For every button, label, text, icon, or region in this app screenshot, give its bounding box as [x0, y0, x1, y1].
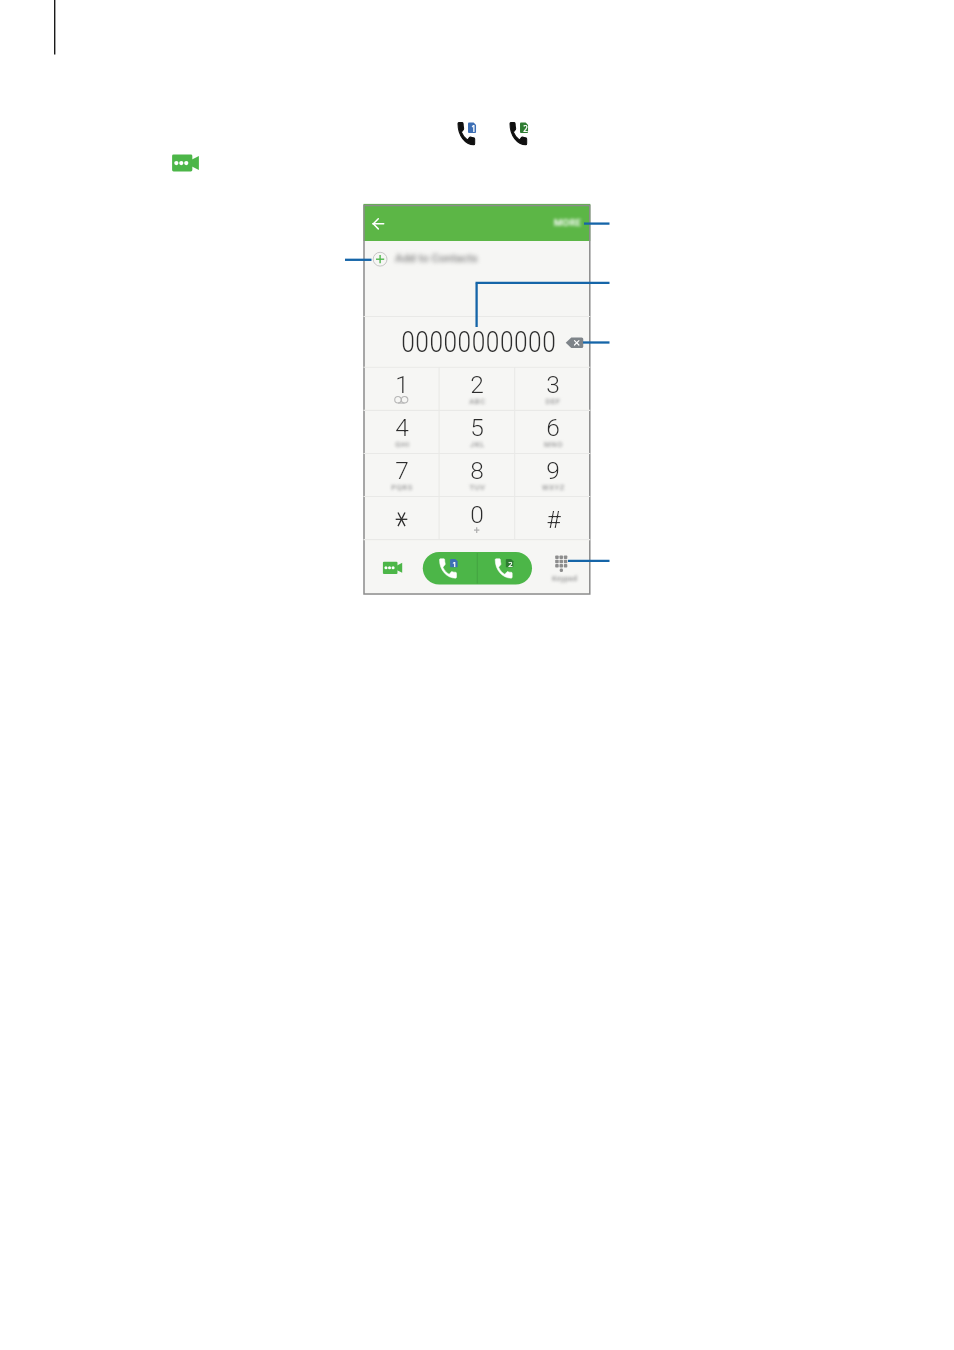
staticText: Add to Contacts — [395, 251, 478, 264]
staticText: WXYZ — [542, 483, 565, 492]
staticText: 1 — [471, 123, 476, 133]
button[interactable] — [364, 497, 440, 540]
button[interactable]: 5 — [439, 410, 515, 453]
button[interactable]: 7 — [364, 453, 440, 496]
button[interactable]: 0 — [439, 497, 515, 540]
staticText: TUV — [469, 483, 486, 492]
staticText: 1 — [452, 559, 457, 567]
staticText: 5 — [470, 413, 484, 442]
button[interactable]: 8 — [439, 453, 515, 496]
staticText: 2 — [523, 123, 528, 133]
staticText: PQRS — [391, 483, 413, 492]
staticText: Keypad — [552, 574, 577, 583]
staticText: DEF — [545, 397, 561, 406]
button[interactable]: 6 — [515, 410, 591, 453]
staticText: 0 — [470, 500, 484, 529]
button[interactable]: 1 — [364, 367, 440, 410]
button[interactable]: 00000000000 — [364, 317, 591, 367]
staticText: JKL — [470, 440, 485, 449]
button[interactable]: Add to Contacts — [364, 241, 591, 276]
staticText: 1 — [395, 370, 409, 399]
button[interactable]: MORE — [546, 204, 590, 241]
staticText: 9 — [546, 456, 560, 485]
staticText: GHI — [395, 440, 410, 449]
button[interactable]: # — [515, 497, 591, 540]
staticText: 00000000000 — [401, 325, 556, 359]
staticText: # — [546, 505, 561, 534]
button[interactable]: 2 — [439, 367, 515, 410]
staticText: 7 — [395, 456, 409, 485]
staticText: ABC — [469, 397, 486, 406]
staticText: 8 — [470, 456, 484, 485]
staticText: 3 — [546, 370, 560, 399]
button[interactable]: 3 — [515, 367, 591, 410]
staticText: 2 — [508, 559, 513, 567]
button[interactable]: 9 — [515, 453, 591, 496]
staticText: MNO — [544, 440, 563, 449]
staticText: MORE — [554, 217, 582, 228]
staticText: 6 — [546, 413, 560, 442]
staticText: 2 — [470, 370, 484, 399]
staticText: 4 — [395, 413, 409, 442]
button[interactable]: 4 — [364, 410, 440, 453]
